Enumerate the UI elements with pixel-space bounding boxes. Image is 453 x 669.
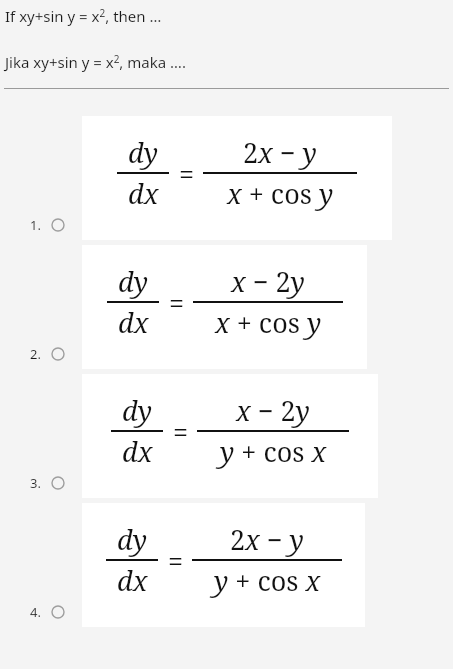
staticText: = <box>168 542 184 579</box>
other: Select option 1. <box>50 217 66 233</box>
staticText: 2x − y <box>243 134 317 171</box>
staticText: 2. <box>30 345 41 363</box>
button[interactable]: dy <box>0 374 453 498</box>
staticText: If xy+sin y = x2, then … <box>5 6 162 26</box>
staticText: 2x − y <box>230 521 304 558</box>
staticText: x + cos y <box>215 304 322 341</box>
staticText: = <box>169 284 185 321</box>
staticText: x + cos y <box>227 175 334 212</box>
staticText: Jika xy+sin y = x2, maka …. <box>5 52 186 72</box>
staticText: y + cos x <box>220 433 327 470</box>
other: Select option 2. <box>50 346 66 362</box>
other: Select option 4. <box>50 604 66 620</box>
button[interactable]: dy <box>0 116 453 240</box>
staticText: dy <box>128 134 158 171</box>
staticText: y + cos x <box>214 562 321 599</box>
staticText: = <box>179 155 195 192</box>
staticText: dx <box>128 175 159 212</box>
staticText: 1. <box>30 216 41 234</box>
staticText: dx <box>117 562 148 599</box>
staticText: 3. <box>30 474 41 492</box>
other: Select option 3. <box>50 475 66 491</box>
staticText: 4. <box>30 603 41 621</box>
staticText: dy <box>118 263 148 300</box>
staticText: dx <box>118 304 149 341</box>
staticText: x − 2y <box>236 392 310 429</box>
staticText: x − 2y <box>231 263 305 300</box>
staticText: dy <box>117 521 147 558</box>
staticText: = <box>173 413 189 450</box>
staticText: dy <box>122 392 152 429</box>
button[interactable]: dy <box>0 245 453 369</box>
button[interactable]: dy <box>0 503 453 627</box>
staticText: dx <box>122 433 153 470</box>
